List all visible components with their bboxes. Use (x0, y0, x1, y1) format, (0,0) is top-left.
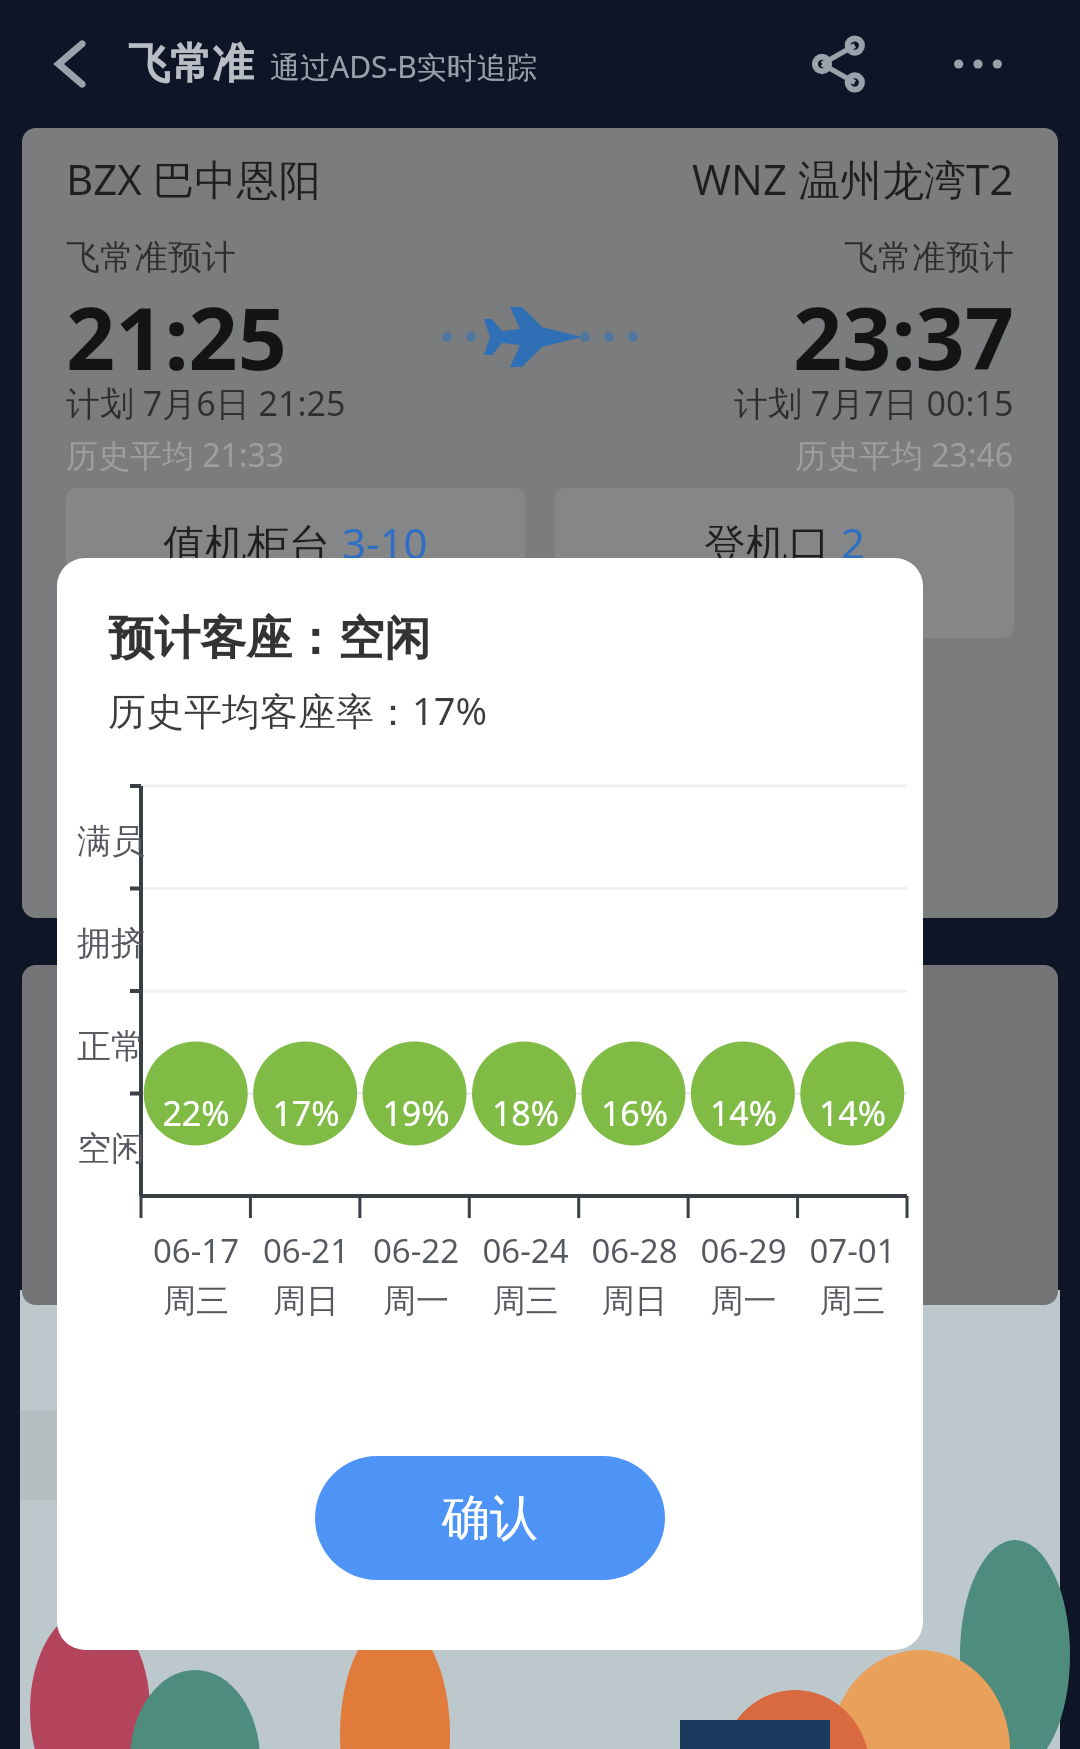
staticText: 正常 (77, 1025, 145, 1068)
staticText: 周三 (471, 1280, 580, 1322)
staticText: 06-28 (580, 1228, 689, 1273)
staticText: 06-22 (361, 1228, 471, 1273)
staticText: 06-17 (141, 1228, 251, 1273)
staticText: 3-10 (342, 514, 428, 571)
staticText: 飞常准预计 (844, 236, 1014, 279)
button[interactable]: Share (796, 22, 880, 106)
staticText: 18% (471, 1090, 580, 1136)
staticText: 飞常准 (128, 38, 254, 91)
staticText: 周日 (251, 1280, 361, 1322)
staticText: 登机口 (704, 514, 841, 571)
button[interactable]: 确认 (315, 1456, 665, 1580)
staticText: 通过ADS-B实时追踪 (270, 46, 537, 87)
staticText: 飞常准预计 (66, 236, 236, 279)
button[interactable]: More options (936, 22, 1020, 106)
staticText: 06-21 (251, 1228, 361, 1273)
staticText: 确认 (442, 1488, 538, 1548)
staticText: 计划 7月6日 21:25 (66, 380, 346, 426)
staticText: 19% (361, 1090, 471, 1136)
button[interactable]: Back (30, 22, 114, 106)
staticText: 拥挤 (77, 922, 145, 965)
staticText: 周三 (141, 1280, 251, 1322)
staticText: 2 (841, 514, 866, 571)
staticText: 22% (141, 1090, 251, 1136)
staticText: BZX 巴中恩阳 (66, 150, 321, 207)
staticText: 07-01 (798, 1228, 907, 1273)
staticText: 周一 (361, 1280, 471, 1322)
staticText: 17% (251, 1090, 361, 1136)
staticText: 14% (798, 1090, 907, 1136)
staticText: 预计客座：空闲 (108, 610, 430, 668)
staticText: WNZ 温州龙湾T2 (692, 150, 1014, 207)
button[interactable]: 登机口 (555, 488, 1014, 638)
staticText: 23:37 (793, 278, 1014, 395)
staticText: 06-24 (471, 1228, 580, 1273)
button[interactable]: 值机柜台 (66, 488, 525, 638)
staticText: 值机柜台 (163, 514, 342, 571)
staticText: 14% (689, 1090, 798, 1136)
staticText: 16% (580, 1090, 689, 1136)
staticText: 06-29 (689, 1228, 798, 1273)
staticText: 周日 (580, 1280, 689, 1322)
staticText: 历史平均客座率：17% (108, 684, 488, 736)
staticText: 历史平均 21:33 (66, 433, 285, 477)
staticText: 周三 (798, 1280, 907, 1322)
staticText: 满员 (77, 820, 145, 863)
staticText: 21:25 (66, 278, 287, 395)
staticText: 计划 7月7日 00:15 (734, 380, 1014, 426)
staticText: 历史平均 23:46 (795, 433, 1014, 477)
staticText: 空闲 (77, 1127, 145, 1170)
staticText: 周一 (689, 1280, 798, 1322)
